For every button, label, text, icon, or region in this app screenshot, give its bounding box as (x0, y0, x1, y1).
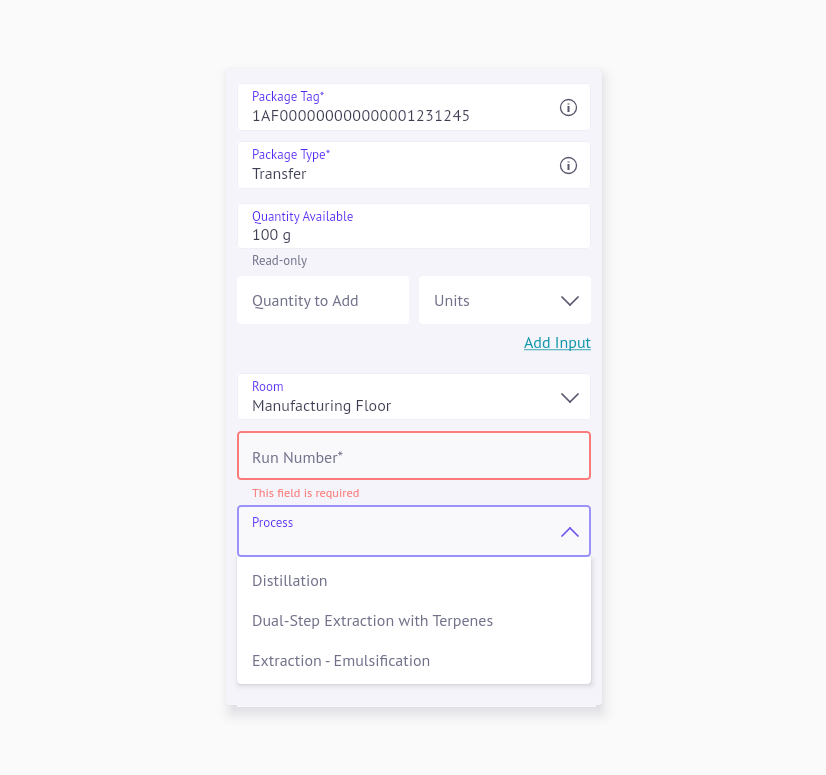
button[interactable]: Run Number* (237, 431, 591, 480)
button[interactable]: Collapse dropdown (556, 518, 584, 546)
button[interactable]: Process (237, 505, 591, 557)
staticText: Extraction - Emulsification (252, 650, 431, 671)
staticText: Package Tag* (252, 88, 325, 105)
staticText: Distillation (252, 570, 328, 591)
button[interactable]: Package Type* (237, 141, 591, 189)
staticText: This field is required (252, 484, 360, 500)
button[interactable]: Room (237, 373, 591, 420)
staticText: Run Number* (252, 447, 344, 468)
staticText: Add Input (524, 332, 591, 353)
button[interactable]: Units (419, 276, 591, 324)
staticText: Manufacturing Floor (252, 395, 392, 416)
button[interactable]: Package Tag* (237, 83, 591, 131)
staticText: Transfer (252, 163, 307, 184)
button[interactable]: Add Input (524, 332, 591, 353)
button[interactable]: Quantity Available (237, 203, 591, 249)
staticText: Quantity Available (252, 208, 354, 225)
staticText: Units (434, 290, 556, 311)
staticText: Process (252, 514, 294, 531)
button[interactable]: Expand dropdown (556, 384, 584, 412)
staticText: Quantity to Add (252, 290, 359, 311)
button[interactable]: Info (554, 151, 582, 179)
button[interactable]: Extraction - Emulsification (237, 637, 591, 677)
button[interactable]: Quantity to Add (237, 276, 409, 324)
staticText: Package Type* (252, 146, 331, 163)
button[interactable]: Dual-Step Extraction with Terpenes (237, 597, 591, 637)
button[interactable]: Distillation (237, 557, 591, 597)
staticText: 1AF000000000000001231245 (252, 105, 471, 126)
button[interactable]: Info (554, 93, 582, 121)
staticText: Dual-Step Extraction with Terpenes (252, 610, 494, 631)
button[interactable]: Expand dropdown (556, 287, 584, 315)
staticText: 100 g (252, 224, 292, 245)
staticText: Read-only (252, 252, 307, 269)
staticText: Room (252, 378, 284, 395)
